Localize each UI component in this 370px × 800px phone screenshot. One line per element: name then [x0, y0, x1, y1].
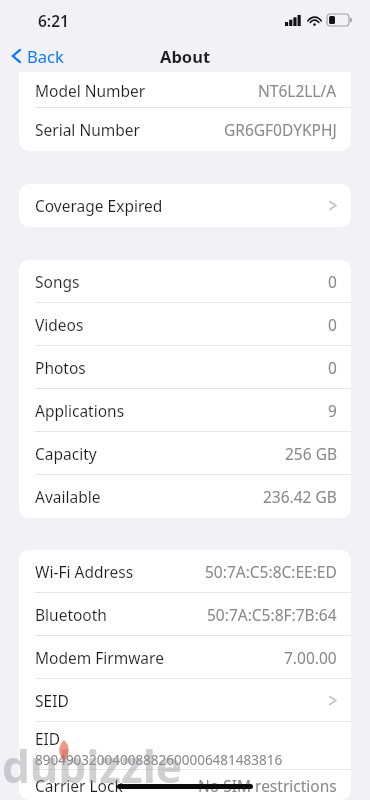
staticText: 256 GB — [285, 443, 337, 464]
staticText: 9 — [328, 400, 337, 421]
staticText: Back — [27, 45, 64, 67]
staticText: 6:21 — [38, 10, 69, 31]
button[interactable]: SEID — [19, 679, 351, 722]
button[interactable]: Songs — [19, 260, 351, 303]
button[interactable]: Coverage Expired — [19, 184, 351, 227]
button[interactable]: Serial Number — [19, 108, 351, 151]
staticText: About — [160, 45, 211, 67]
button[interactable]: Back — [11, 45, 64, 67]
button[interactable]: Photos — [19, 346, 351, 389]
button[interactable]: Available — [19, 475, 351, 518]
staticText: Photos — [35, 357, 86, 378]
other: Coverage Expired — [328, 198, 337, 213]
staticText: Bluetooth — [35, 604, 107, 625]
staticText: Carrier Lock — [35, 775, 123, 796]
staticText: 236.42 GB — [263, 486, 337, 507]
button[interactable]: EID — [19, 722, 351, 770]
staticText: Videos — [35, 314, 84, 335]
staticText: Modem Firmware — [35, 647, 164, 668]
staticText: SEID — [35, 690, 69, 711]
staticText: 89049032004008882600006481483816 — [35, 751, 283, 769]
staticText: Coverage Expired — [35, 195, 163, 216]
staticText: Model Number — [35, 80, 146, 101]
staticText: 50:7A:C5:8F:7B:64 — [207, 604, 337, 625]
staticText: Available — [35, 486, 101, 507]
staticText: Capacity — [35, 443, 97, 464]
staticText: dubizzle — [2, 736, 183, 796]
staticText: 0 — [328, 271, 337, 292]
button[interactable]: Capacity — [19, 432, 351, 475]
staticText: GR6GF0DYKPHJ — [224, 119, 337, 140]
staticText: Wi-Fi Address — [35, 561, 134, 582]
other: SEID — [328, 693, 337, 708]
staticText: 0 — [328, 357, 337, 378]
button[interactable]: Wi-Fi Address — [19, 550, 351, 593]
button[interactable]: Applications — [19, 389, 351, 432]
button[interactable]: Model Number — [19, 72, 351, 108]
staticText: Applications — [35, 400, 125, 421]
button[interactable]: Videos — [19, 303, 351, 346]
staticText: No SIM restrictions — [198, 775, 337, 796]
button[interactable]: Bluetooth — [19, 593, 351, 636]
staticText: EID — [35, 728, 61, 749]
staticText: 0 — [328, 314, 337, 335]
staticText: NT6L2LL/A — [258, 80, 337, 101]
staticText: Serial Number — [35, 119, 140, 140]
button[interactable]: Carrier Lock — [19, 770, 351, 800]
button[interactable]: Modem Firmware — [19, 636, 351, 679]
staticText: Songs — [35, 271, 80, 292]
staticText: 7.00.00 — [284, 647, 337, 668]
staticText: 50:7A:C5:8C:EE:ED — [205, 561, 337, 582]
